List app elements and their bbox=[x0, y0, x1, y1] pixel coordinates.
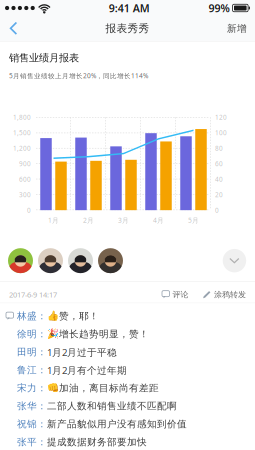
staticText: 300 bbox=[19, 190, 31, 199]
staticText: 1,200 bbox=[13, 144, 31, 152]
staticText: 徐明： bbox=[17, 328, 47, 340]
staticText: 80 bbox=[215, 144, 223, 152]
staticText: 9:41 AM bbox=[109, 1, 150, 15]
button[interactable]: 新增 bbox=[213, 16, 255, 41]
staticText: 宋力： bbox=[17, 382, 47, 394]
staticText: 加油，离目标尚有差距 bbox=[59, 382, 159, 394]
staticText: 二部人数和销售业绩不匹配啊 bbox=[47, 400, 177, 412]
staticText: 报表秀秀 bbox=[105, 22, 149, 35]
staticText: 👊 bbox=[47, 382, 59, 394]
staticText: 新增 bbox=[227, 22, 247, 35]
staticText: 👍 bbox=[47, 310, 59, 322]
button[interactable]: 涂鸦转发 bbox=[202, 287, 255, 303]
staticText: 20 bbox=[215, 190, 223, 199]
staticText: 600 bbox=[19, 175, 31, 183]
staticText: 1月2月有个过年期 bbox=[47, 364, 127, 377]
staticText: 2017-6-9 14:17 bbox=[9, 290, 57, 300]
staticText: 60 bbox=[215, 159, 223, 168]
staticText: 5月 bbox=[188, 216, 199, 225]
button[interactable]: Expand bbox=[223, 249, 246, 272]
staticText: 0 bbox=[215, 206, 219, 214]
staticText: 提成数据财务部要加快 bbox=[47, 436, 147, 448]
staticText: 4月 bbox=[153, 216, 164, 225]
staticText: 祝锦： bbox=[17, 418, 47, 430]
staticText: 🎉 bbox=[47, 328, 59, 340]
staticText: 5月销售业绩较上月增长20%，同比增长114% bbox=[9, 71, 148, 80]
staticText: 销售业绩月报表 bbox=[9, 51, 79, 64]
staticText: 林盛： bbox=[17, 310, 47, 322]
staticText: 0 bbox=[27, 206, 31, 214]
staticText: 1月2月过于平稳 bbox=[47, 346, 117, 359]
staticText: 3月 bbox=[118, 216, 129, 225]
staticText: 100 bbox=[215, 128, 227, 137]
staticText: 张华： bbox=[17, 400, 47, 412]
staticText: 评论 bbox=[172, 290, 188, 300]
staticText: 赞，耶！ bbox=[59, 310, 99, 322]
staticText: 1,800 bbox=[13, 113, 31, 121]
button[interactable]: Back bbox=[0, 16, 33, 41]
staticText: 1月 bbox=[48, 216, 59, 225]
staticText: 张平： bbox=[17, 436, 47, 448]
staticText: 涂鸦转发 bbox=[214, 290, 246, 300]
staticText: 田明： bbox=[17, 346, 47, 358]
staticText: 99% bbox=[208, 1, 229, 15]
staticText: 1,500 bbox=[13, 128, 31, 137]
staticText: 120 bbox=[215, 113, 227, 121]
staticText: 鲁江： bbox=[17, 364, 47, 376]
staticText: 新产品貌似用户没有感知到价值 bbox=[47, 418, 187, 430]
staticText: 40 bbox=[215, 175, 223, 183]
staticText: 900 bbox=[19, 159, 31, 168]
staticText: 2月 bbox=[83, 216, 94, 225]
staticText: 增长趋势明显，赞！ bbox=[59, 328, 149, 340]
button[interactable]: 评论 bbox=[162, 287, 202, 303]
